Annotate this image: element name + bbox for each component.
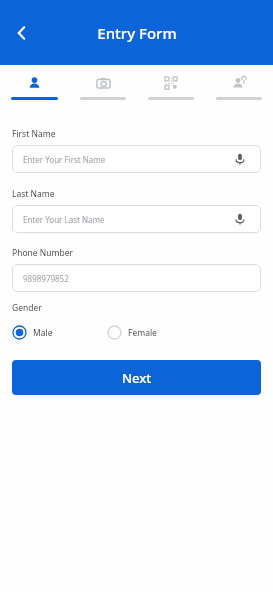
staticText: Next: [122, 369, 152, 387]
staticText: Phone Number: [12, 247, 73, 259]
button[interactable]: Photo: [69, 65, 137, 100]
staticText: Enter Your Last Name: [23, 214, 105, 225]
button[interactable]: Voice input: [232, 151, 248, 167]
button[interactable]: Personal details: [0, 65, 69, 100]
staticText: Enter Your First Name: [23, 154, 106, 165]
button[interactable]: Male: [12, 325, 53, 340]
button[interactable]: Female: [107, 325, 157, 340]
staticText: 9898979852: [23, 273, 69, 284]
button[interactable]: 9898979852: [12, 264, 261, 292]
staticText: Last Name: [12, 188, 55, 200]
button[interactable]: Scan code: [137, 65, 205, 100]
button[interactable]: Next: [12, 360, 261, 395]
button[interactable]: Other info: [205, 65, 273, 100]
button[interactable]: Enter Your First Name: [12, 145, 261, 173]
staticText: Entry Form: [97, 23, 177, 43]
staticText: Female: [128, 327, 157, 339]
staticText: Gender: [12, 302, 42, 314]
button[interactable]: Voice input: [232, 211, 248, 227]
button[interactable]: Back: [6, 17, 38, 49]
staticText: Male: [33, 327, 53, 339]
staticText: First Name: [12, 128, 56, 140]
button[interactable]: Enter Your Last Name: [12, 205, 261, 233]
